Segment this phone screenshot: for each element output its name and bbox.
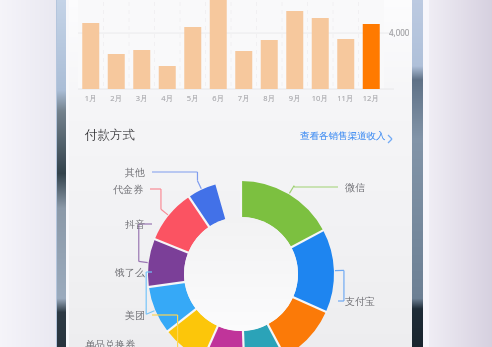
- button[interactable]: 查看各销售渠道收入: [288, 125, 393, 145]
